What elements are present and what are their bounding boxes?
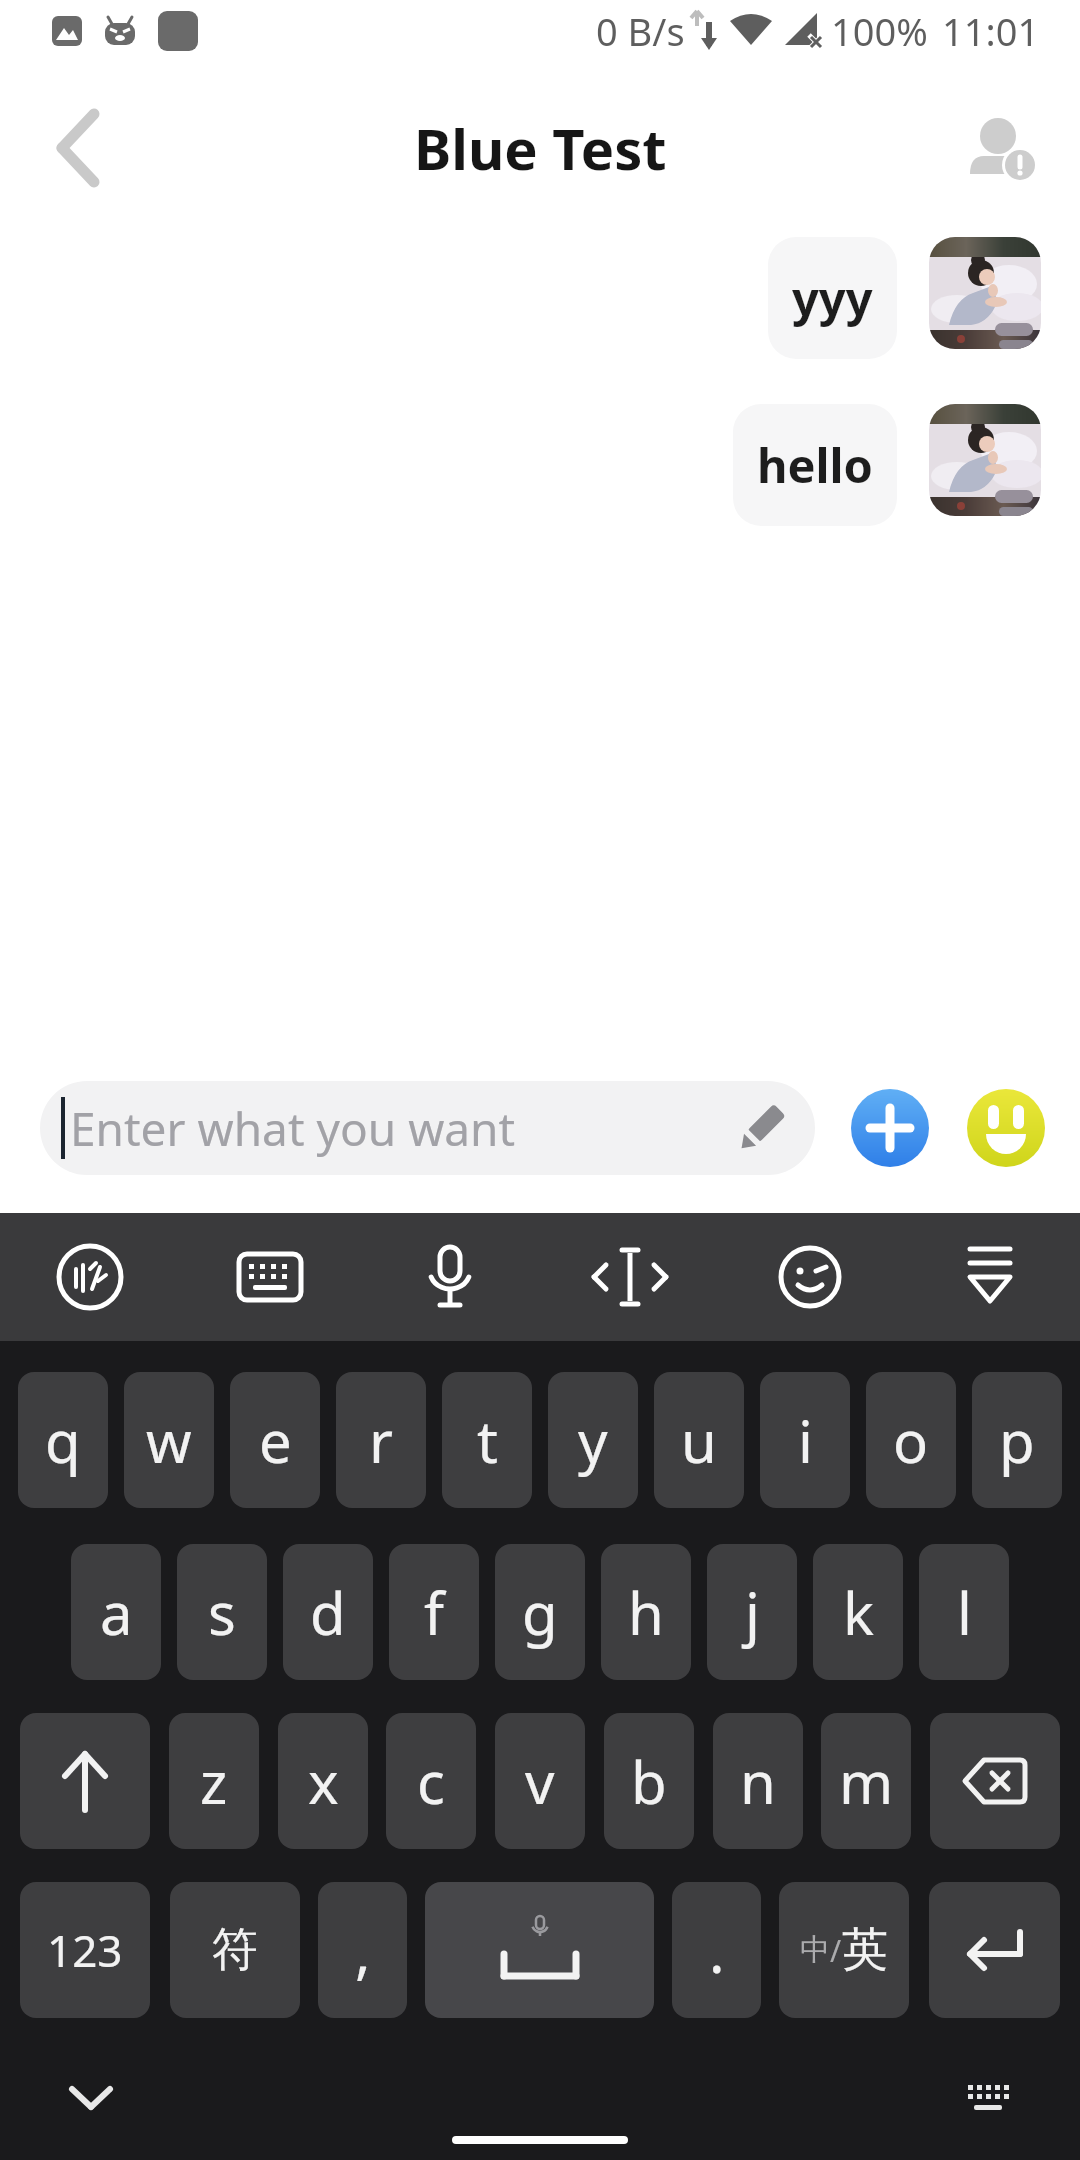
button[interactable]: [968, 116, 1038, 180]
staticText: x: [308, 1742, 339, 1821]
button[interactable]: q: [18, 1372, 108, 1508]
staticText: d: [310, 1573, 346, 1652]
staticText: n: [740, 1742, 776, 1821]
staticText: ,: [355, 1911, 371, 1990]
button[interactable]: e: [230, 1372, 320, 1508]
staticText: c: [417, 1742, 445, 1821]
staticText: u: [681, 1401, 717, 1480]
button[interactable]: x: [278, 1713, 368, 1849]
button[interactable]: [966, 2083, 1010, 2113]
button[interactable]: o: [866, 1372, 956, 1508]
button[interactable]: [929, 237, 1041, 349]
button[interactable]: w: [124, 1372, 214, 1508]
button[interactable]: s: [177, 1544, 267, 1680]
staticText: .: [709, 1911, 725, 1990]
staticText: s: [208, 1573, 236, 1652]
staticText: h: [628, 1573, 664, 1652]
staticText: v: [525, 1742, 555, 1821]
button[interactable]: f: [389, 1544, 479, 1680]
button[interactable]: [851, 1089, 929, 1167]
button[interactable]: v: [495, 1713, 585, 1849]
button[interactable]: Enter what you want: [40, 1081, 815, 1175]
button[interactable]: y: [548, 1372, 638, 1508]
button[interactable]: h: [601, 1544, 691, 1680]
button[interactable]: [20, 1713, 150, 1849]
button[interactable]: g: [495, 1544, 585, 1680]
staticText: /: [830, 1930, 842, 1971]
staticText: j: [745, 1573, 760, 1652]
staticText: 123: [47, 1920, 123, 1980]
button[interactable]: k: [813, 1544, 903, 1680]
button[interactable]: t: [442, 1372, 532, 1508]
staticText: l: [957, 1573, 972, 1652]
staticText: 符: [212, 1921, 258, 1979]
button[interactable]: [68, 2085, 114, 2111]
staticText: r: [369, 1401, 393, 1480]
button[interactable]: a: [71, 1544, 161, 1680]
button[interactable]: n: [713, 1713, 803, 1849]
button[interactable]: .: [672, 1882, 761, 2018]
staticText: i: [798, 1401, 813, 1480]
button[interactable]: [930, 1713, 1060, 1849]
button[interactable]: [720, 1213, 900, 1341]
button[interactable]: b: [604, 1713, 694, 1849]
staticText: e: [259, 1401, 292, 1480]
staticText: z: [200, 1742, 228, 1821]
staticText: yyy: [792, 266, 873, 330]
staticText: w: [146, 1401, 192, 1480]
button[interactable]: 123: [20, 1882, 150, 2018]
staticText: t: [477, 1401, 498, 1480]
button[interactable]: [929, 404, 1041, 516]
staticText: a: [100, 1573, 133, 1652]
button[interactable]: r: [336, 1372, 426, 1508]
button[interactable]: [0, 1213, 180, 1341]
staticText: Blue Test: [414, 110, 667, 186]
button[interactable]: z: [169, 1713, 259, 1849]
button[interactable]: p: [972, 1372, 1062, 1508]
staticText: q: [45, 1401, 81, 1480]
staticText: 英: [842, 1921, 888, 1979]
button[interactable]: 中: [779, 1882, 909, 2018]
staticText: y: [578, 1401, 608, 1480]
button[interactable]: m: [821, 1713, 911, 1849]
staticText: k: [843, 1573, 874, 1652]
button[interactable]: [967, 1089, 1045, 1167]
button[interactable]: [540, 1213, 720, 1341]
button[interactable]: l: [919, 1544, 1009, 1680]
staticText: m: [839, 1742, 894, 1821]
staticText: p: [999, 1401, 1035, 1480]
staticText: 100%: [831, 5, 928, 57]
staticText: 中: [800, 1931, 830, 1969]
button[interactable]: d: [283, 1544, 373, 1680]
button[interactable]: u: [654, 1372, 744, 1508]
button[interactable]: [360, 1213, 540, 1341]
button[interactable]: i: [760, 1372, 850, 1508]
staticText: Enter what you want: [70, 1097, 516, 1160]
staticText: o: [893, 1401, 929, 1480]
staticText: 0 B/s: [596, 5, 685, 57]
button[interactable]: [180, 1213, 360, 1341]
staticText: b: [631, 1742, 667, 1821]
staticText: hello: [757, 433, 873, 497]
staticText: f: [424, 1573, 444, 1652]
button[interactable]: [425, 1882, 654, 2018]
button[interactable]: yyy: [768, 237, 897, 359]
button[interactable]: [58, 110, 98, 186]
staticText: 11:01: [942, 5, 1040, 57]
button[interactable]: j: [707, 1544, 797, 1680]
staticText: g: [522, 1573, 558, 1652]
button[interactable]: [900, 1213, 1080, 1341]
button[interactable]: 符: [170, 1882, 300, 2018]
button[interactable]: [929, 1882, 1060, 2018]
button[interactable]: c: [386, 1713, 476, 1849]
button[interactable]: ,: [318, 1882, 407, 2018]
button[interactable]: hello: [733, 404, 897, 526]
